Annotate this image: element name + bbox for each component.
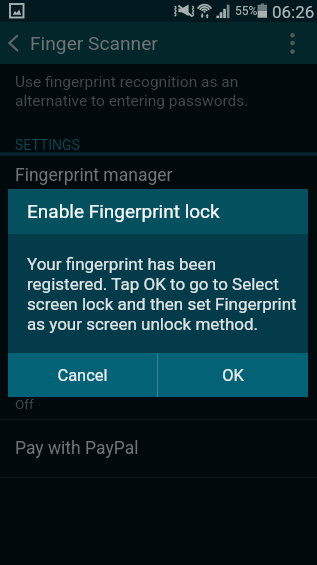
staticText: Finger Scanner — [30, 32, 158, 55]
staticText: 06:26 — [272, 2, 315, 22]
button[interactable]: More options — [279, 22, 317, 64]
staticText: SETTINGS — [15, 137, 80, 153]
staticText: OK — [222, 366, 244, 385]
staticText: Your fingerprint has been registered. Ta… — [27, 254, 299, 334]
staticText: Fingerprint manager — [15, 165, 173, 186]
button[interactable]: Fingerprint manager — [0, 155, 317, 419]
button[interactable]: Navigate up — [0, 22, 28, 64]
button[interactable]: OK — [158, 353, 308, 397]
staticText: Pay with PayPal — [15, 438, 139, 459]
button[interactable]: Cancel — [8, 353, 157, 397]
button[interactable]: Pay with PayPal — [0, 420, 317, 477]
staticText: Enable Fingerprint lock — [27, 200, 220, 222]
staticText: Use fingerprint recognition as an altern… — [15, 73, 249, 110]
staticText: Off — [15, 396, 34, 412]
staticText: Cancel — [57, 366, 108, 385]
staticText: 55% — [235, 4, 258, 18]
